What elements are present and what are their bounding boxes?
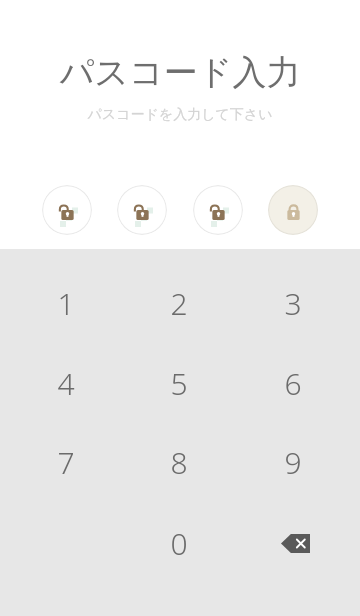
- staticText: 6: [284, 363, 302, 404]
- button[interactable]: 3: [246, 267, 340, 339]
- staticText: 2: [170, 283, 188, 324]
- button[interactable]: 6: [246, 347, 340, 419]
- other: Digit empty: [117, 185, 167, 235]
- staticText: パスコードを入力して下さい: [0, 106, 360, 124]
- staticText: 3: [284, 283, 302, 324]
- staticText: 9: [284, 442, 302, 483]
- staticText: 0: [170, 523, 188, 564]
- button[interactable]: Backspace: [248, 507, 342, 579]
- button[interactable]: 1: [19, 267, 113, 339]
- button[interactable]: 7: [19, 426, 113, 498]
- staticText: 5: [170, 363, 188, 404]
- other: Digit entered: [268, 185, 318, 235]
- other: Digit empty: [193, 185, 243, 235]
- other: Digit empty: [42, 185, 92, 235]
- staticText: 8: [170, 442, 188, 483]
- staticText: パスコード入力: [0, 51, 360, 94]
- staticText: 4: [57, 363, 75, 404]
- button[interactable]: 5: [132, 347, 226, 419]
- staticText: 7: [57, 442, 75, 483]
- staticText: 1: [57, 283, 75, 324]
- button[interactable]: 8: [132, 426, 226, 498]
- button[interactable]: 9: [246, 426, 340, 498]
- button[interactable]: 2: [132, 267, 226, 339]
- button[interactable]: 0: [132, 507, 226, 579]
- button[interactable]: 4: [19, 347, 113, 419]
